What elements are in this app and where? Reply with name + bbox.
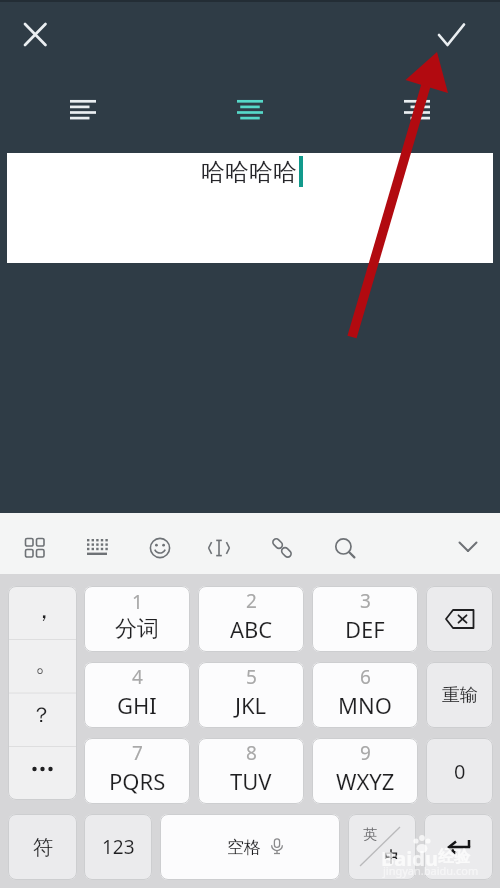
staticText: WXYZ xyxy=(336,766,395,796)
button[interactable]: 8 xyxy=(198,738,304,804)
staticText: 5 xyxy=(246,664,257,690)
button[interactable] xyxy=(24,537,46,559)
button[interactable] xyxy=(424,814,493,880)
staticText: 符 xyxy=(33,835,53,860)
staticText: MNO xyxy=(338,690,392,720)
staticText: 0 xyxy=(454,758,466,785)
button[interactable]: 重输 xyxy=(426,662,493,728)
button[interactable] xyxy=(207,537,231,559)
staticText: 3 xyxy=(360,588,371,614)
button[interactable]: 空格 xyxy=(160,814,340,880)
button[interactable]: 4 xyxy=(84,662,190,728)
staticText: 123 xyxy=(102,834,135,860)
staticText: GHI xyxy=(117,690,157,720)
button[interactable] xyxy=(70,100,96,122)
button[interactable]: 9 xyxy=(312,738,418,804)
staticText: 6 xyxy=(360,664,371,690)
button[interactable]: 符 xyxy=(8,814,77,880)
staticText: jingyan.baidu.com xyxy=(383,863,479,878)
button[interactable]: ， xyxy=(8,586,77,800)
button[interactable] xyxy=(237,100,263,122)
staticText: 重输 xyxy=(442,684,478,707)
button[interactable] xyxy=(86,538,108,558)
button[interactable]: 5 xyxy=(198,662,304,728)
staticText: 2 xyxy=(246,588,257,614)
staticText: 4 xyxy=(132,664,143,690)
button[interactable] xyxy=(270,536,294,560)
staticText: 经验 xyxy=(438,847,470,867)
staticText: DEF xyxy=(345,614,385,644)
button[interactable] xyxy=(458,540,478,554)
staticText: TUV xyxy=(230,766,272,796)
staticText: PQRS xyxy=(109,766,166,796)
button[interactable] xyxy=(148,536,172,560)
staticText: ， xyxy=(32,595,56,625)
button[interactable]: 英 xyxy=(348,814,416,880)
staticText: JKL xyxy=(235,690,267,720)
button[interactable] xyxy=(435,16,469,50)
button[interactable]: 哈哈哈哈 xyxy=(7,153,493,263)
staticText: ABC xyxy=(230,614,273,644)
button[interactable]: 1 xyxy=(84,586,190,652)
button[interactable] xyxy=(21,20,49,48)
staticText: 分词 xyxy=(115,615,159,643)
staticText: 8 xyxy=(246,740,257,766)
staticText: 英 xyxy=(363,826,377,844)
button[interactable]: 2 xyxy=(198,586,304,652)
button[interactable]: 123 xyxy=(84,814,152,880)
button[interactable]: 6 xyxy=(312,662,418,728)
staticText: 1 xyxy=(132,589,143,615)
staticText: 9 xyxy=(360,740,371,766)
staticText: 中 xyxy=(384,848,399,867)
button[interactable]: 7 xyxy=(84,738,190,804)
staticText: 。 xyxy=(35,648,59,678)
button[interactable] xyxy=(426,586,493,652)
staticText: 空格 xyxy=(227,837,261,858)
button[interactable]: 0 xyxy=(426,738,493,804)
button[interactable] xyxy=(333,536,357,560)
staticText: Baidu xyxy=(381,845,438,872)
staticText: 7 xyxy=(132,740,143,766)
button[interactable]: 3 xyxy=(312,586,418,652)
staticText: ？ xyxy=(31,702,52,728)
button[interactable] xyxy=(404,100,430,122)
staticText: 哈哈哈哈 xyxy=(201,157,297,187)
